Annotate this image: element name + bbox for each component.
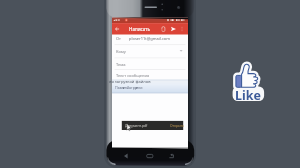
staticText: ploser11t@gmail.com (129, 36, 171, 41)
staticText: Документ.pdf (125, 123, 148, 128)
staticText: Открыть (170, 123, 185, 128)
staticText: Текст сообщения (116, 73, 150, 78)
staticText: Загрузки (127, 85, 143, 90)
staticText: ля загрузкой файлов (109, 79, 151, 85)
button[interactable]: Like (231, 62, 267, 104)
staticText: Like (235, 87, 261, 104)
staticText: От (116, 36, 121, 41)
staticText: Тема (116, 62, 126, 67)
staticText: Память (115, 85, 129, 90)
staticText: Кому (116, 49, 126, 54)
staticText: Написать (129, 26, 151, 32)
